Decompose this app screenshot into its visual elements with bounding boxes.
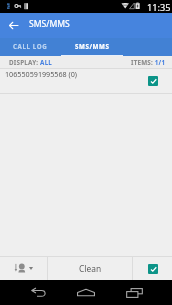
button[interactable]: Home <box>62 280 110 305</box>
button[interactable]: Clean <box>48 257 132 280</box>
button[interactable]: Select all <box>133 257 172 280</box>
staticText: SMS/MMS <box>75 42 110 50</box>
staticText: Clean <box>79 263 102 274</box>
button[interactable]: CALL LOG <box>0 38 61 56</box>
button[interactable]: Choose contact source <box>0 257 47 280</box>
button[interactable]: Recent apps <box>110 280 158 305</box>
button[interactable]: SMS/MMS <box>61 38 123 56</box>
staticText: SMS/MMS <box>29 18 70 30</box>
staticText: 106550591995568 (0) <box>5 69 77 79</box>
staticText: DISPLAY: ALL <box>9 58 53 67</box>
button[interactable]: Navigate up <box>0 13 26 38</box>
staticText: 11:35 <box>147 1 171 14</box>
button[interactable]: 106550591995568 (0) <box>0 69 172 93</box>
staticText: ITEMS: 1/1 <box>131 58 166 67</box>
button[interactable]: Back <box>14 280 62 305</box>
staticText: CALL LOG <box>13 42 48 50</box>
